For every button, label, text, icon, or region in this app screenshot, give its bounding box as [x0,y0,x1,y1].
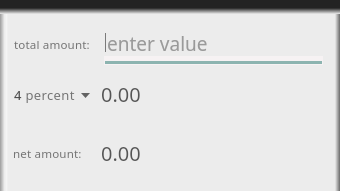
other: Choose percentage [81,93,90,98]
staticText: enter value [107,31,208,57]
staticText: 0.00 [101,81,141,108]
staticText: 0.00 [101,140,141,167]
button[interactable]: 4 percent [14,86,99,104]
staticText: total amount: [14,37,90,53]
button[interactable]: total amount, enter value [104,28,323,66]
staticText: net amount: [13,146,82,162]
staticText: 4 percent [14,86,75,104]
